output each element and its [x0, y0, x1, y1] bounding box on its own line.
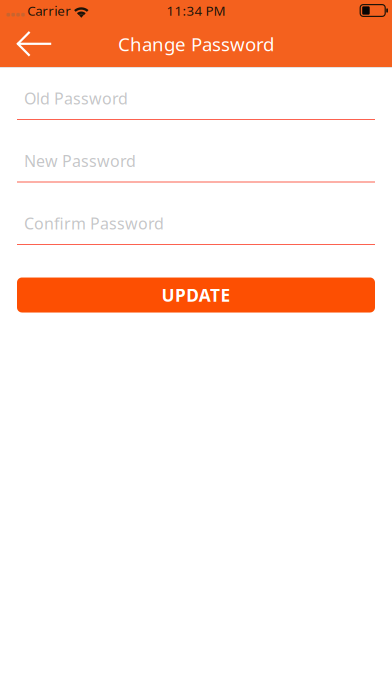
staticText: Change Password: [118, 32, 274, 56]
staticText: Carrier: [27, 2, 71, 19]
staticText: Old Password: [24, 88, 128, 109]
staticText: Confirm Password: [24, 213, 164, 234]
staticText: UPDATE: [161, 283, 230, 306]
button[interactable]: Back: [0, 21, 62, 67]
staticText: 11:34 PM: [166, 2, 225, 19]
button[interactable]: UPDATE: [17, 277, 375, 312]
staticText: New Password: [24, 150, 136, 171]
